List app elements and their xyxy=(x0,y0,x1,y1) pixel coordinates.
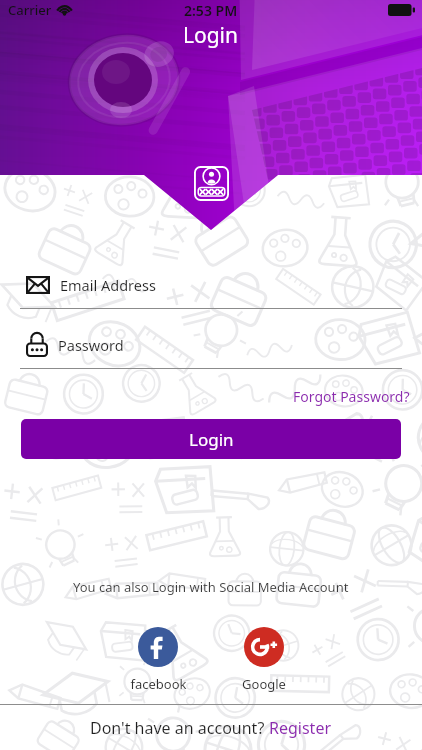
staticText: Password xyxy=(58,335,124,355)
staticText: Email Address xyxy=(60,275,156,295)
staticText: Login xyxy=(189,428,234,451)
button[interactable]: Register xyxy=(269,717,332,739)
other: Login xyxy=(194,166,229,201)
button[interactable]: Forgot Password? xyxy=(293,383,422,410)
staticText: Google xyxy=(242,675,286,693)
staticText: Don't have an account? xyxy=(90,717,269,739)
button[interactable]: Email Address xyxy=(20,271,402,309)
button[interactable]: Google xyxy=(244,627,284,693)
button[interactable]: Password xyxy=(20,331,402,369)
button[interactable]: facebook xyxy=(138,627,178,693)
staticText: You can also Login with Social Media Acc… xyxy=(73,578,349,596)
button[interactable]: Login xyxy=(21,419,401,459)
staticText: facebook xyxy=(130,675,187,693)
staticText: Login xyxy=(183,21,239,50)
staticText: 2:53 PM xyxy=(184,1,238,19)
staticText: Carrier xyxy=(8,1,52,19)
